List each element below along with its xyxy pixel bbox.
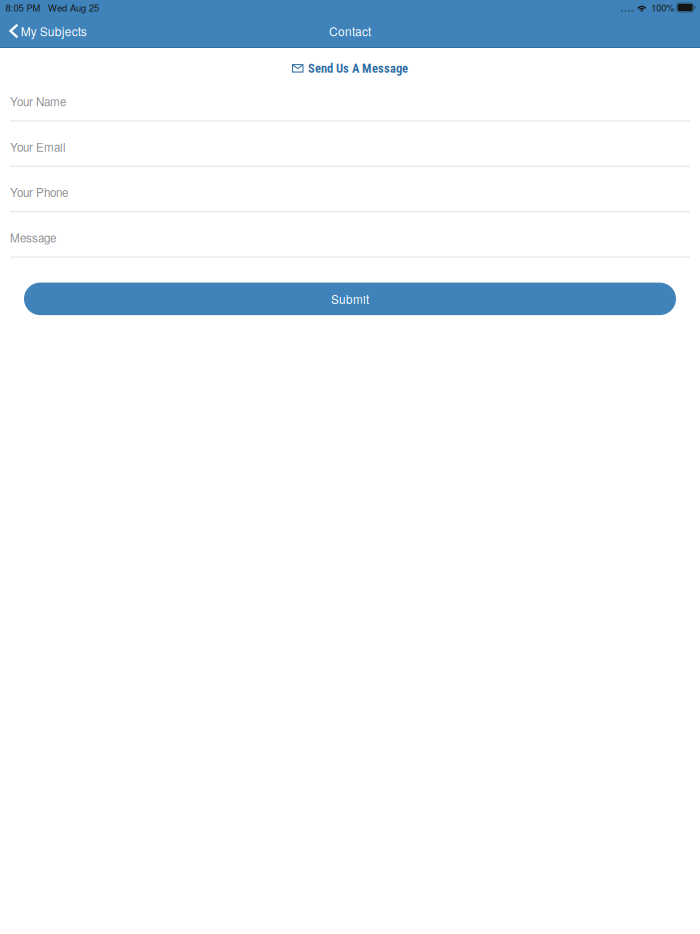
button[interactable]: Submit bbox=[24, 283, 676, 315]
staticText: 100% bbox=[651, 1, 674, 14]
button[interactable]: My Subjects bbox=[0, 15, 97, 47]
staticText: Your Email bbox=[10, 138, 66, 155]
button[interactable]: Your Name bbox=[0, 76, 700, 121]
staticText: Your Phone bbox=[10, 184, 68, 200]
staticText: 8:05 PM bbox=[5, 1, 40, 14]
button[interactable]: Your Phone bbox=[0, 167, 700, 212]
button[interactable]: Send Us A Message bbox=[0, 48, 700, 76]
button[interactable]: Your Email bbox=[0, 121, 700, 167]
staticText: Wed Aug 25 bbox=[48, 1, 99, 14]
staticText: My Subjects bbox=[21, 22, 87, 40]
button[interactable]: Message bbox=[0, 212, 700, 258]
staticText: Message bbox=[10, 229, 56, 246]
staticText: Contact bbox=[329, 22, 371, 40]
staticText: Submit bbox=[331, 290, 369, 307]
staticText: Your Name bbox=[10, 93, 66, 110]
staticText: Send Us A Message bbox=[308, 61, 408, 76]
